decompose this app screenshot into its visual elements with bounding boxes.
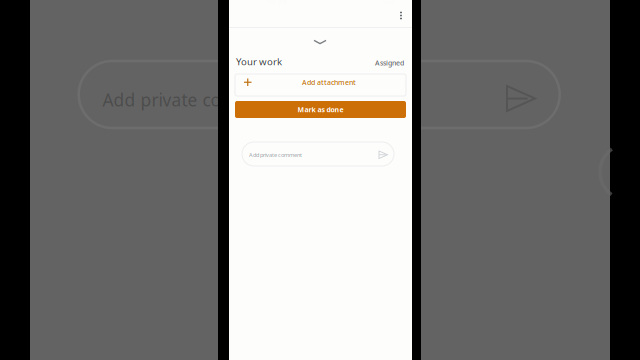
staticText: Your work xyxy=(236,55,282,68)
staticText: Add private comment xyxy=(249,151,302,159)
button[interactable]: More options xyxy=(394,8,408,22)
staticText: Add attachment xyxy=(302,77,356,87)
button[interactable]: Collapse xyxy=(298,35,342,49)
staticText: Mark as done xyxy=(297,105,343,114)
button[interactable]: Mark as done xyxy=(235,101,406,118)
button[interactable]: Add private comment xyxy=(242,142,394,166)
button[interactable]: Add attachment xyxy=(235,74,406,96)
staticText: Assigned xyxy=(375,58,404,67)
staticText: Add private comment xyxy=(102,88,279,112)
